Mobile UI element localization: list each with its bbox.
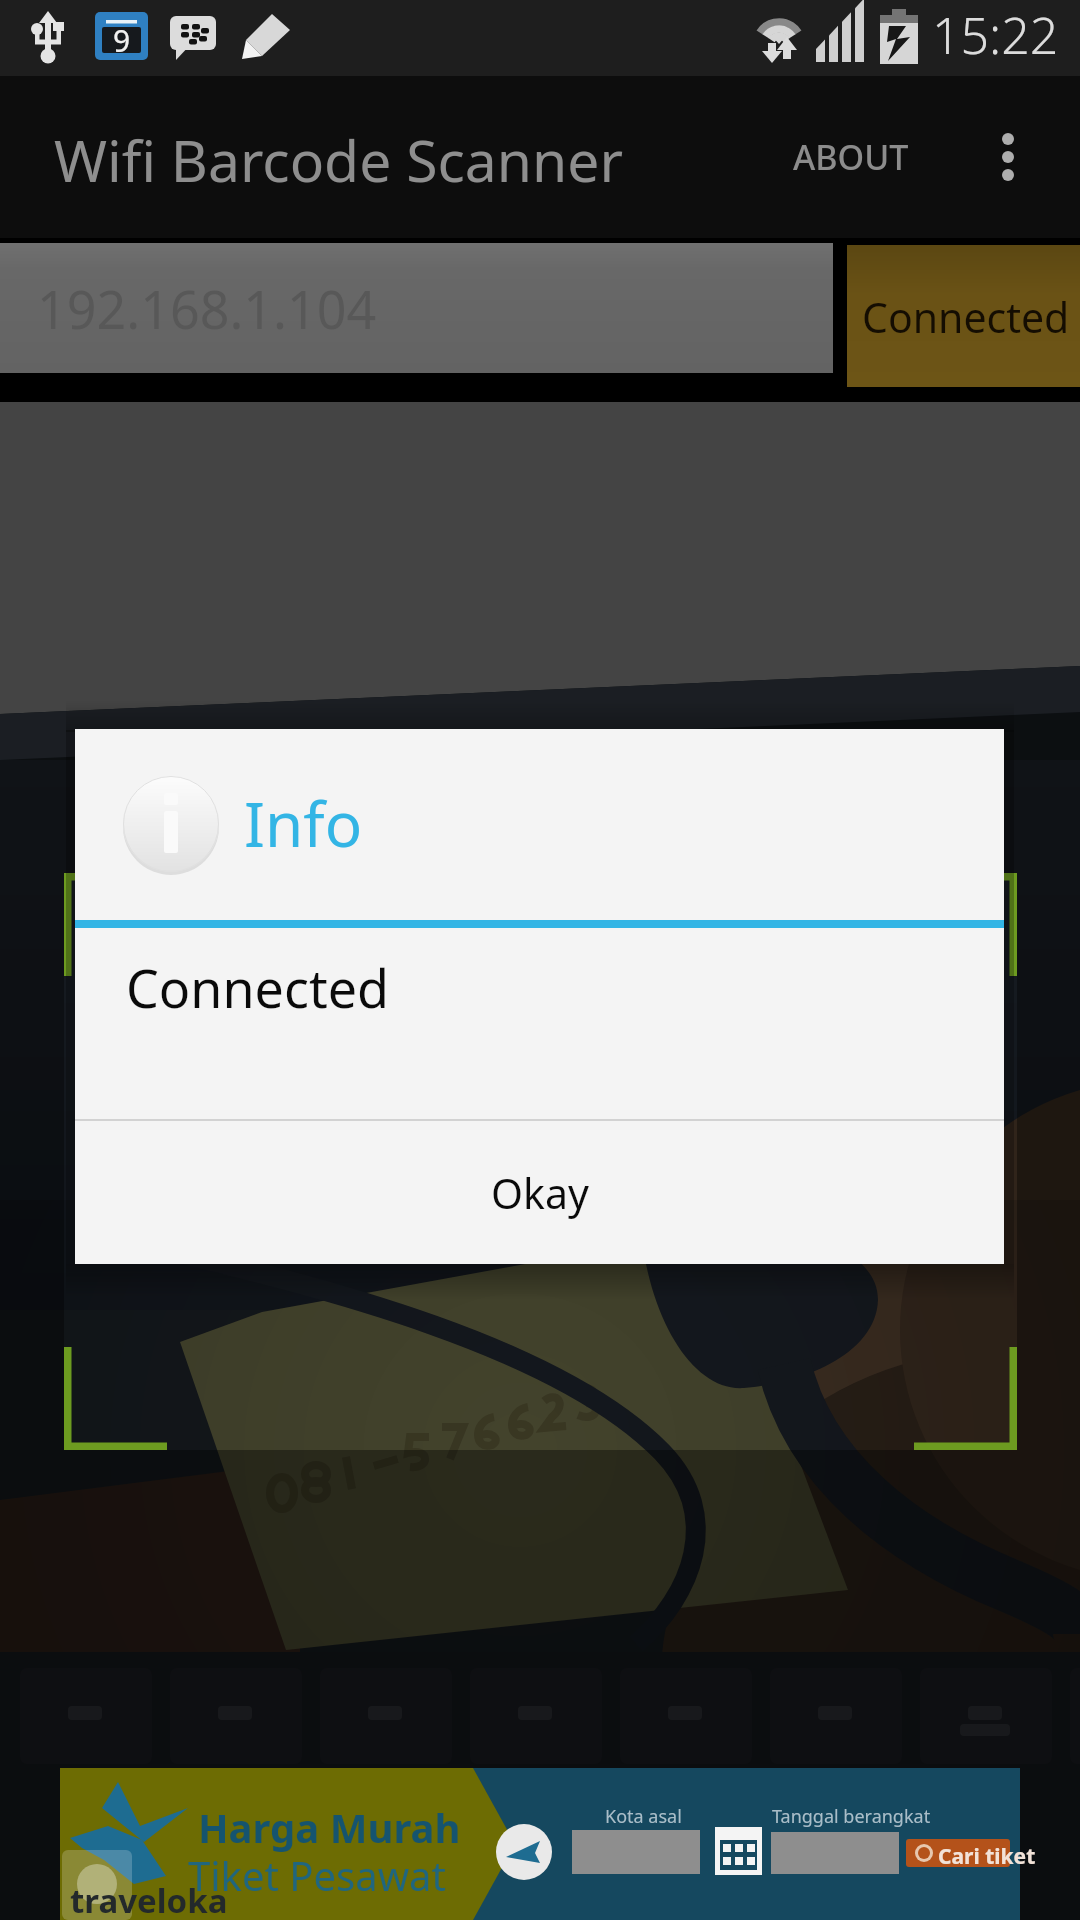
staticText: 15:22 [932,1,1059,69]
button[interactable]: ABOUT [765,76,937,238]
staticText: Connected [126,952,389,1023]
staticText: Info [244,781,363,865]
staticText: traveloka [70,1878,228,1920]
button[interactable]: 192.168.1.104 [0,243,833,373]
button[interactable]: Advertisement banner [60,1768,1020,1920]
button[interactable]: More options [952,76,1064,238]
staticText: Tanggal berangkat [772,1804,931,1829]
button[interactable] [847,245,1080,387]
button[interactable]: Okay [75,1121,1004,1264]
staticText: Kota asal [605,1804,682,1829]
staticText: Wifi Barcode Scanner [54,121,623,199]
staticText: ABOUT [793,134,909,180]
staticText: 9 [113,20,131,61]
staticText: Tiket Pesawat [188,1848,446,1902]
staticText: Harga Murah [198,1800,461,1854]
staticText: 192.168.1.104 [37,273,377,344]
staticText: Cari tiket [938,1842,1036,1871]
staticText: Okay [491,1165,589,1221]
staticText: Connected [862,289,1080,345]
